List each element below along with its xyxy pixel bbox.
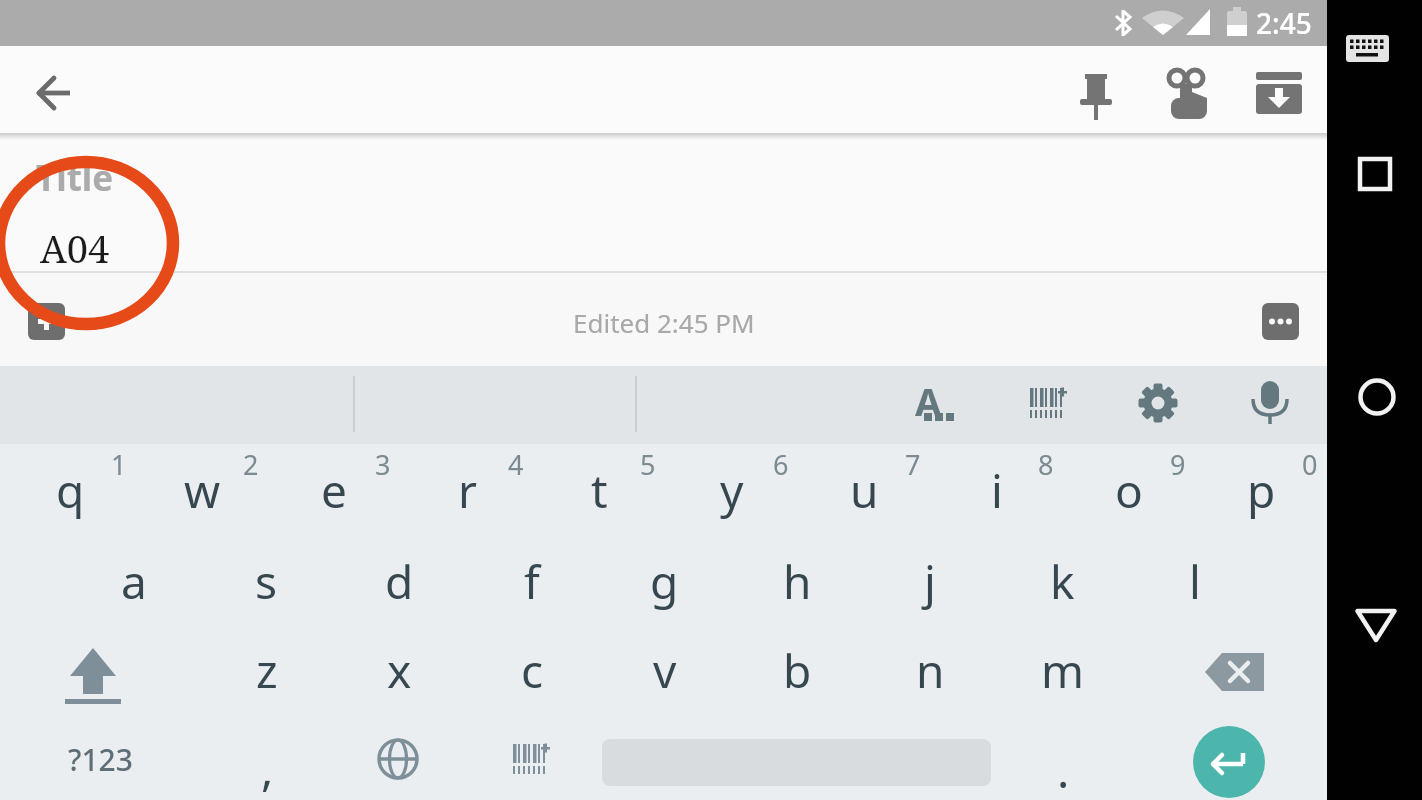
staticText: 0 <box>1302 446 1318 483</box>
staticText: g <box>650 550 679 613</box>
staticText: 3 <box>375 446 391 483</box>
staticText: v <box>653 639 677 702</box>
staticText: j <box>924 550 936 613</box>
staticText: h <box>783 550 812 613</box>
staticText: . <box>1057 739 1070 800</box>
button[interactable]: r <box>412 448 522 532</box>
button[interactable] <box>1068 64 1124 124</box>
staticText: 5 <box>640 446 656 483</box>
staticText: z <box>256 639 278 702</box>
button[interactable]: e <box>279 448 389 532</box>
staticText: m <box>1041 639 1085 702</box>
button[interactable]: o <box>1074 448 1184 532</box>
button[interactable] <box>1252 66 1306 120</box>
button[interactable] <box>1352 151 1398 197</box>
staticText: 2 <box>243 446 259 483</box>
button[interactable] <box>1242 375 1298 431</box>
button[interactable] <box>1193 726 1265 798</box>
staticText: k <box>1050 550 1075 613</box>
button[interactable]: k <box>1007 539 1117 623</box>
button[interactable] <box>1160 62 1218 124</box>
button[interactable] <box>1192 632 1278 708</box>
button[interactable]: q <box>15 448 125 532</box>
button[interactable] <box>1350 598 1402 650</box>
staticText: t <box>591 459 608 522</box>
button[interactable]: t <box>544 448 654 532</box>
staticText: u <box>850 459 879 522</box>
staticText: w <box>184 459 221 522</box>
staticText: y <box>720 459 744 522</box>
staticText: a <box>121 550 147 613</box>
staticText: d <box>385 550 414 613</box>
staticText: 6 <box>773 446 789 483</box>
button[interactable] <box>495 723 567 795</box>
button[interactable] <box>1020 375 1076 431</box>
button[interactable] <box>1346 35 1390 63</box>
staticText: r <box>458 459 477 522</box>
staticText: c <box>521 639 544 702</box>
staticText: 1 <box>111 446 127 483</box>
button[interactable]: A <box>902 375 964 431</box>
button[interactable] <box>28 303 66 341</box>
button[interactable]: a <box>79 539 189 623</box>
staticText: ?123 <box>68 739 133 780</box>
button[interactable]: , <box>222 726 312 800</box>
button[interactable] <box>28 66 82 120</box>
button[interactable]: u <box>809 448 919 532</box>
button[interactable]: m <box>1008 628 1118 712</box>
button[interactable] <box>1262 303 1300 341</box>
button[interactable]: s <box>211 539 321 623</box>
staticText: , <box>261 737 274 800</box>
staticText: i <box>991 459 1003 522</box>
staticText: l <box>1189 550 1201 613</box>
button[interactable]: n <box>875 628 985 712</box>
staticText: o <box>1115 459 1143 522</box>
button[interactable]: ?123 <box>30 717 170 800</box>
button[interactable]: g <box>609 539 719 623</box>
button[interactable] <box>1130 375 1186 431</box>
staticText: s <box>255 550 278 613</box>
button[interactable]: c <box>477 628 587 712</box>
staticText: p <box>1247 459 1276 522</box>
button[interactable]: l <box>1140 539 1250 623</box>
button[interactable]: z <box>212 628 322 712</box>
button[interactable]: y <box>677 448 787 532</box>
staticText: q <box>56 459 85 522</box>
staticText: f <box>524 550 540 613</box>
button[interactable]: d <box>344 539 454 623</box>
staticText: 9 <box>1170 446 1186 483</box>
staticText: Edited 2:45 PM <box>573 305 755 340</box>
button[interactable] <box>52 628 132 708</box>
staticText: 2:45 <box>1256 4 1312 42</box>
button[interactable]: j <box>875 539 985 623</box>
staticText: A04 <box>40 222 110 272</box>
button[interactable]: h <box>742 539 852 623</box>
staticText: b <box>783 639 812 702</box>
button[interactable]: b <box>742 628 852 712</box>
staticText: e <box>321 459 347 522</box>
staticText: n <box>916 639 945 702</box>
button[interactable]: v <box>610 628 720 712</box>
button[interactable]: x <box>344 628 454 712</box>
button[interactable] <box>362 723 434 795</box>
button[interactable]: i <box>942 448 1052 532</box>
button[interactable]: w <box>147 448 257 532</box>
staticText: 4 <box>508 446 524 483</box>
button[interactable] <box>1351 371 1403 423</box>
button[interactable]: . <box>1018 728 1108 800</box>
staticText: x <box>387 639 412 702</box>
staticText: 8 <box>1038 446 1054 483</box>
staticText: A <box>915 375 942 427</box>
staticText: Title <box>36 154 114 202</box>
button[interactable]: p <box>1206 448 1316 532</box>
button[interactable]: f <box>477 539 587 623</box>
staticText: 7 <box>905 446 921 483</box>
